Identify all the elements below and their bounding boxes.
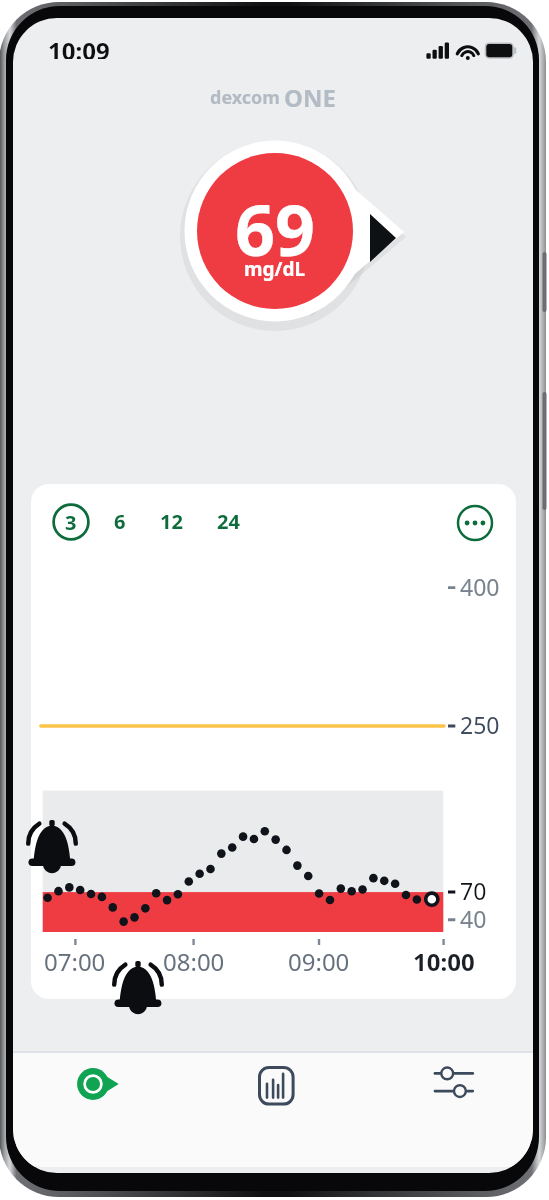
- staticText: 250: [460, 709, 500, 740]
- button[interactable]: 6: [100, 500, 140, 542]
- button[interactable]: Low glucose alert: [26, 820, 78, 875]
- button[interactable]: Alert event: [112, 961, 164, 1016]
- staticText: 09:00: [288, 945, 350, 977]
- staticText: mg/dL: [244, 256, 306, 282]
- staticText: 69: [235, 181, 316, 276]
- button[interactable]: More options: [454, 502, 496, 544]
- staticText: 12: [160, 508, 183, 535]
- staticText: ONE: [284, 81, 336, 114]
- staticText: 6: [114, 508, 126, 535]
- button[interactable]: Statistics: [187, 1053, 360, 1167]
- staticText: 10:00: [413, 945, 475, 977]
- button[interactable]: 3: [50, 501, 92, 543]
- button[interactable]: Glucose 69 mg/dL, steady: [165, 119, 415, 343]
- staticText: 24: [217, 508, 240, 535]
- staticText: dexcom: [210, 85, 280, 110]
- staticText: 400: [460, 571, 500, 602]
- button[interactable]: Home: [13, 1053, 187, 1167]
- staticText: 70: [460, 875, 487, 906]
- button[interactable]: 12: [151, 500, 191, 542]
- staticText: 40: [460, 903, 487, 934]
- staticText: 3: [65, 509, 77, 536]
- staticText: 08:00: [163, 945, 225, 977]
- button[interactable]: Settings: [360, 1053, 533, 1167]
- staticText: 10:09: [48, 34, 110, 59]
- button[interactable]: 24: [208, 500, 248, 542]
- staticText: 07:00: [44, 945, 106, 977]
